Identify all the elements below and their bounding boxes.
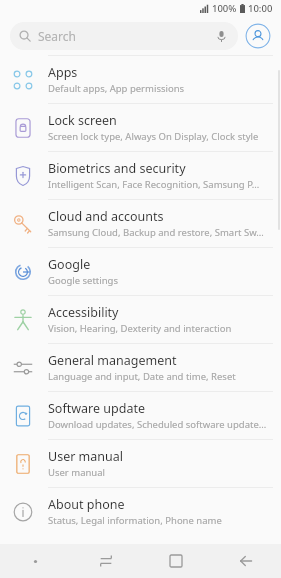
staticText: Google settings: [48, 274, 119, 287]
staticText: 100%: [212, 2, 237, 15]
staticText: Screen lock type, Always On Display, Clo…: [48, 130, 259, 143]
button[interactable]: Voice search: [213, 28, 229, 44]
button[interactable]: User manual: [0, 440, 281, 488]
button[interactable]: Software update: [0, 392, 281, 440]
staticText: User manual: [48, 466, 105, 479]
staticText: Biometrics and security: [48, 160, 186, 177]
button[interactable]: Account: [245, 23, 271, 49]
button[interactable]: Switch: [71, 544, 141, 578]
staticText: Lock screen: [48, 112, 117, 129]
staticText: Search: [38, 28, 76, 44]
button[interactable]: Apps: [0, 56, 281, 104]
button[interactable]: Lock screen: [0, 104, 281, 152]
button[interactable]: Cloud and accounts: [0, 200, 281, 248]
staticText: Download updates, Scheduled software upd…: [48, 418, 267, 431]
button[interactable]: Accessibility: [0, 296, 281, 344]
staticText: Vision, Hearing, Dexterity and interacti…: [48, 322, 232, 335]
button[interactable]: Recents: [141, 544, 211, 578]
staticText: 10:00: [248, 2, 273, 15]
button[interactable]: General management: [0, 344, 281, 392]
button[interactable]: Search: [10, 22, 238, 50]
staticText: Intelligent Scan, Face Recognition, Sams…: [48, 178, 260, 191]
button[interactable]: About phone: [0, 488, 281, 535]
button[interactable]: Menu: [0, 544, 71, 578]
staticText: Google: [48, 256, 91, 273]
staticText: General management: [48, 352, 177, 369]
staticText: Software update: [48, 400, 145, 417]
staticText: Accessibility: [48, 304, 119, 321]
button[interactable]: Back: [211, 544, 281, 578]
staticText: Cloud and accounts: [48, 208, 164, 225]
button[interactable]: Google: [0, 248, 281, 296]
staticText: Samsung Cloud, Backup and restore, Smart…: [48, 226, 264, 239]
staticText: User manual: [48, 448, 123, 465]
staticText: About phone: [48, 496, 125, 513]
button[interactable]: Biometrics and security: [0, 152, 281, 200]
staticText: Language and input, Date and time, Reset: [48, 370, 236, 383]
staticText: Apps: [48, 64, 78, 81]
staticText: Status, Legal information, Phone name: [48, 514, 222, 527]
staticText: Default apps, App permissions: [48, 82, 185, 95]
